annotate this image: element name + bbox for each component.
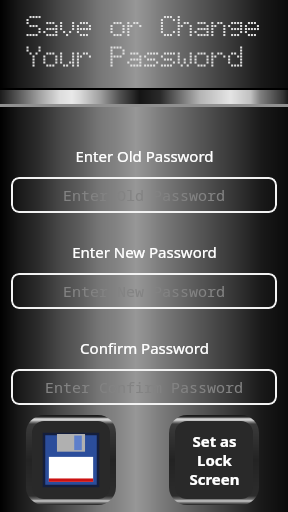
staticText: Enter New Password bbox=[72, 242, 217, 262]
staticText: Enter New Password bbox=[63, 281, 226, 301]
staticText: Enter Confirm Password bbox=[45, 377, 244, 397]
staticText: Enter Old Password bbox=[75, 146, 214, 166]
button[interactable]: Set as Lock Screen bbox=[175, 421, 253, 499]
staticText: Enter Old Password bbox=[63, 185, 226, 205]
button[interactable]: Enter New Password bbox=[11, 273, 277, 309]
button[interactable]: Save bbox=[32, 421, 110, 499]
button[interactable]: Enter Confirm Password bbox=[11, 369, 277, 405]
button[interactable]: Enter Old Password bbox=[11, 177, 277, 213]
staticText: Confirm Password bbox=[80, 338, 209, 358]
staticText: Set as Lock Screen bbox=[189, 431, 240, 489]
